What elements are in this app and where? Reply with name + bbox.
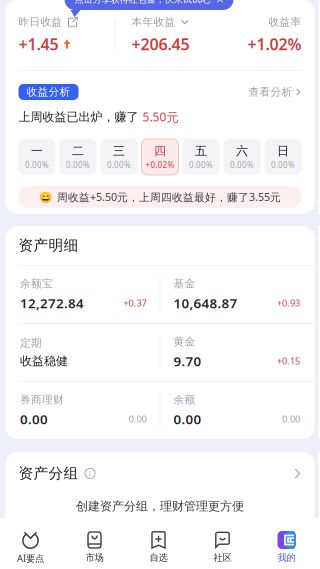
staticText: 六	[236, 144, 248, 158]
staticText: +0.02%	[145, 159, 174, 170]
staticText: 收益稳健	[20, 354, 68, 368]
button[interactable]: 三	[100, 139, 137, 175]
staticText: 定期	[20, 336, 42, 350]
staticText: 0.00%	[25, 159, 49, 170]
staticText: +1.02%	[247, 33, 301, 55]
staticText: 日	[277, 144, 289, 158]
button[interactable]: 资产分组	[5, 452, 314, 495]
staticText: 五	[195, 144, 207, 158]
staticText: +0.93	[277, 297, 300, 309]
staticText: 资产明细	[18, 236, 78, 254]
staticText: 本年收益	[131, 15, 175, 28]
button[interactable]: 本年收益	[131, 15, 189, 28]
staticText: 一	[31, 144, 43, 158]
staticText: +206.45	[131, 33, 189, 55]
button[interactable]: 社区	[190, 518, 254, 569]
staticText: 四	[154, 144, 166, 158]
button[interactable]: 昨日收益	[18, 15, 78, 28]
staticText: 点击分享获得红包金，快来试试吧	[74, 0, 209, 5]
staticText: 余额	[173, 393, 195, 406]
staticText: 上周收益已出炉，赚了	[18, 110, 142, 124]
staticText: 0.00%	[107, 159, 131, 170]
staticText: 0.00	[282, 413, 300, 425]
button[interactable]: 点击分享获得红包金，快来试试吧	[64, 0, 233, 10]
button[interactable]: 我的	[254, 518, 318, 569]
staticText: i	[89, 469, 91, 478]
staticText: +0.15	[277, 355, 300, 367]
staticText: 黄金	[173, 335, 195, 348]
staticText: +1.45	[18, 33, 58, 55]
staticText: 😄	[39, 191, 52, 203]
staticText: 基金	[173, 277, 195, 290]
button[interactable]: 定期	[7, 324, 159, 381]
staticText: 查看分析	[248, 85, 292, 98]
staticText: 10,648.87	[173, 294, 237, 312]
button[interactable]: 四	[141, 139, 178, 175]
staticText: 0.00	[128, 413, 146, 425]
button[interactable]: 市场	[62, 518, 126, 569]
staticText: 0.00%	[66, 159, 90, 170]
staticText: 0.00%	[271, 159, 295, 170]
staticText: 余额宝	[20, 277, 53, 290]
staticText: 0.00%	[189, 159, 213, 170]
staticText: 资产分组	[18, 464, 78, 482]
staticText: +0.37	[123, 297, 146, 309]
staticText: 昨日收益	[18, 15, 62, 28]
staticText: 市场	[85, 552, 103, 563]
button[interactable]: 一	[18, 139, 55, 175]
button[interactable]: 余额	[160, 382, 313, 439]
staticText: 0.00%	[230, 159, 254, 170]
staticText: 0.00	[173, 410, 201, 428]
button[interactable]: 日	[264, 139, 301, 175]
staticText: 三	[113, 144, 125, 158]
button[interactable]: 自选	[126, 518, 190, 569]
staticText: 12,272.84	[20, 294, 84, 312]
button[interactable]: 余额宝	[7, 266, 159, 323]
staticText: 自选	[149, 552, 167, 563]
staticText: 二	[72, 144, 84, 158]
button[interactable]: AI要点	[0, 518, 62, 569]
staticText: 我的	[277, 552, 295, 563]
staticText: 0.00	[20, 410, 48, 428]
staticText: AI要点	[17, 552, 44, 564]
staticText: 收益率	[268, 15, 301, 28]
button[interactable]: 六	[223, 139, 260, 175]
staticText: 收益分析	[26, 85, 70, 98]
staticText: 社区	[213, 552, 231, 563]
button[interactable]: 查看分析	[248, 85, 301, 98]
staticText: 创建资产分组，理财管理更方便	[76, 499, 244, 514]
button[interactable]: 收益分析	[18, 84, 78, 100]
staticText: 5.50元	[142, 109, 178, 125]
button[interactable]: 券商理财	[7, 382, 159, 439]
button[interactable]: 黄金	[160, 324, 313, 381]
staticText: 周收益+5.50元，上周四收益最好，赚了3.55元	[57, 190, 281, 204]
button[interactable]: 基金	[160, 266, 313, 323]
button[interactable]: 二	[59, 139, 96, 175]
button[interactable]: 五	[182, 139, 219, 175]
staticText: 券商理财	[20, 393, 64, 406]
staticText: 9.70	[173, 352, 201, 370]
